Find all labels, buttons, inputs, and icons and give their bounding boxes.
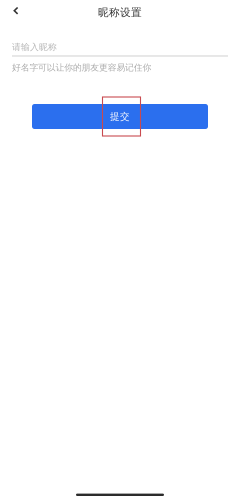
button[interactable]: 提交: [32, 104, 208, 129]
button[interactable]: Back: [0, 0, 30, 22]
staticText: 提交: [110, 110, 130, 123]
staticText: 请输入昵称: [12, 41, 57, 53]
staticText: 昵称设置: [98, 6, 142, 19]
staticText: 好名字可以让你的朋友更容易记住你: [12, 62, 151, 73]
